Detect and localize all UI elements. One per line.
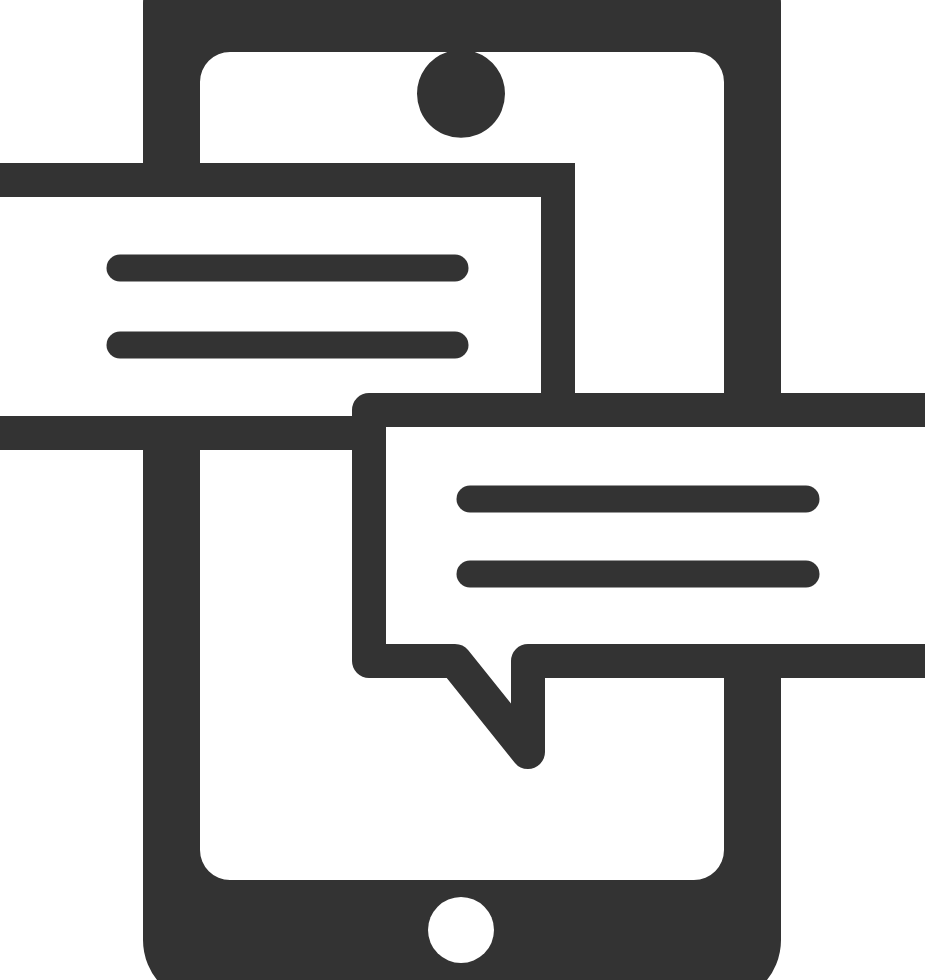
button[interactable]: Phone messaging illustration bbox=[0, 0, 925, 980]
